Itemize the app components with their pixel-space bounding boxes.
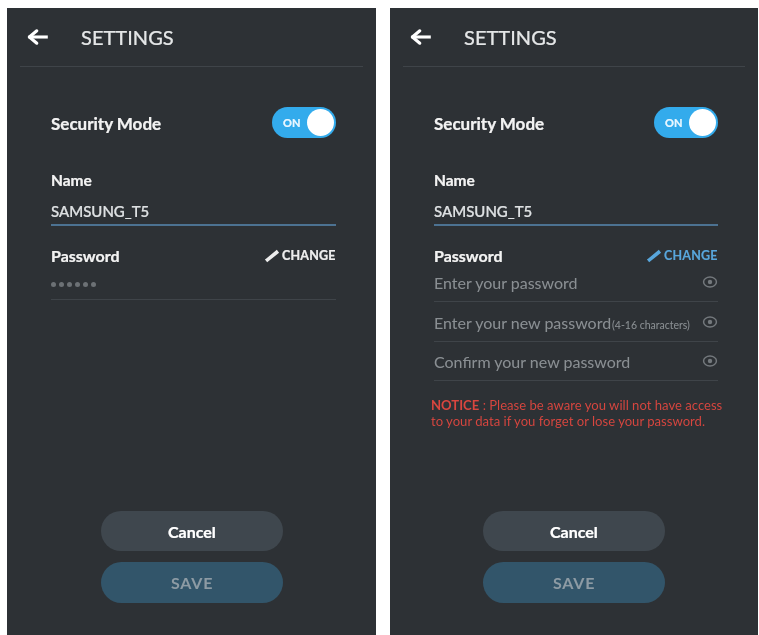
button[interactable]: Back: [24, 23, 52, 51]
staticText: CHANGE: [664, 248, 718, 263]
staticText: NOTICE : Please be aware you will not ha…: [431, 397, 727, 429]
staticText: SAVE: [171, 573, 214, 592]
button[interactable]: Back: [407, 23, 435, 51]
button[interactable]: Show password: [703, 315, 718, 330]
staticText: ON: [665, 116, 683, 129]
staticText: Security Mode: [51, 113, 162, 133]
staticText: SETTINGS: [81, 25, 174, 49]
staticText: Security Mode: [434, 113, 545, 133]
staticText: SETTINGS: [464, 25, 557, 49]
staticText: Password: [434, 246, 503, 264]
button[interactable]: Cancel: [101, 511, 283, 551]
staticText: SAMSUNG_T5: [51, 202, 150, 220]
staticText: Cancel: [550, 522, 598, 541]
staticText: Name: [434, 171, 475, 190]
staticText: Name: [51, 171, 92, 190]
staticText: SAMSUNG_T5: [434, 202, 533, 220]
staticText: Confirm your new password: [434, 352, 631, 371]
button[interactable]: Security mode toggle: [272, 107, 336, 138]
button[interactable]: Cancel: [483, 511, 665, 551]
staticText: Enter your password: [434, 273, 578, 292]
button[interactable]: Show password: [703, 275, 718, 290]
staticText: (4-16 characters): [612, 319, 690, 332]
staticText: SAVE: [553, 573, 596, 592]
staticText: Enter your new password: [434, 313, 612, 332]
button[interactable]: Security mode toggle: [654, 107, 718, 138]
button[interactable]: Show password: [703, 354, 718, 369]
staticText: CHANGE: [282, 248, 336, 263]
button[interactable]: Security Mode: [434, 107, 718, 138]
button[interactable]: CHANGE: [648, 248, 718, 263]
button[interactable]: CHANGE: [266, 248, 336, 263]
staticText: ON: [283, 116, 301, 129]
staticText: Password: [51, 246, 120, 264]
button[interactable]: SAVE: [483, 562, 665, 603]
button[interactable]: Security Mode: [51, 107, 336, 138]
button[interactable]: SAVE: [101, 562, 283, 603]
staticText: Cancel: [168, 522, 216, 541]
